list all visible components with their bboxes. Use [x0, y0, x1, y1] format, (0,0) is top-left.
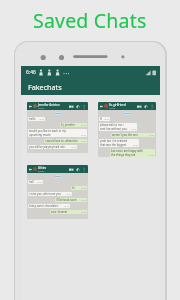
other: Back — [29, 105, 32, 108]
button[interactable]: Back — [98, 102, 156, 157]
staticText: 12:15 — [37, 181, 42, 184]
staticText: bring some chocolates with you — [29, 204, 61, 208]
staticText: 12:15 — [149, 154, 154, 157]
staticText: 6:46 — [26, 69, 36, 76]
staticText: 12:15 — [133, 144, 138, 147]
other: Call options — [69, 167, 86, 172]
staticText: Athira — [38, 166, 47, 170]
staticText: 12:15 — [81, 199, 86, 202]
staticText: yeah but i've realized that was the bigg… — [100, 139, 130, 146]
staticText: 12:15 — [71, 146, 76, 149]
staticText: online — [38, 107, 45, 110]
staticText: hello — [29, 180, 34, 184]
staticText: hello — [29, 117, 36, 121]
staticText: would you like to work in my upcoming mo… — [29, 129, 78, 136]
button[interactable]: Back — [27, 165, 88, 219]
other: Call options — [69, 104, 86, 109]
staticText: 12:15 — [149, 134, 154, 137]
staticText: Saved Chats — [33, 7, 147, 34]
staticText: Jennifer Aniston — [38, 103, 60, 107]
staticText: 12:15 — [81, 134, 86, 137]
staticText: Today — [55, 112, 61, 115]
staticText: Today — [55, 175, 61, 178]
staticText: weren't you the one dumping? — [112, 133, 146, 137]
other: Call options — [137, 104, 154, 109]
staticText: online — [38, 170, 45, 173]
other: Back — [29, 168, 32, 171]
staticText: i would love to. whats the role about? — [45, 139, 78, 143]
staticText: you will be playing lead role. — [29, 145, 66, 149]
staticText: Fakechats — [28, 82, 62, 92]
staticText: please talk to me. i cant live without y… — [100, 123, 128, 130]
staticText: hi — [72, 186, 75, 190]
staticText: Ex-girlfriend — [109, 103, 126, 107]
staticText: 12:15 — [64, 205, 69, 208]
staticText: 12:15 — [131, 128, 136, 131]
staticText: Hi, — [100, 117, 101, 121]
staticText: 12:15 — [104, 118, 109, 121]
other: Back — [100, 105, 103, 108]
staticText: hi, jennifer — [61, 123, 75, 127]
staticText: 12:15 — [66, 193, 71, 196]
button[interactable]: Back — [27, 102, 88, 153]
staticText: i'll be back soon honey — [56, 198, 78, 202]
staticText: 12:15 — [39, 118, 44, 121]
staticText: but now i am happy with the things they … — [111, 149, 146, 156]
staticText: i miss you. when are you coming back — [29, 192, 63, 196]
staticText: 12:15 — [81, 140, 86, 143]
staticText: 12:15 — [81, 124, 86, 127]
staticText: 12:15 — [81, 187, 86, 190]
staticText: sure. forever anything else? — [51, 210, 78, 214]
staticText: Today — [124, 112, 130, 115]
staticText: online — [109, 107, 116, 110]
staticText: 12:15 — [81, 211, 86, 214]
